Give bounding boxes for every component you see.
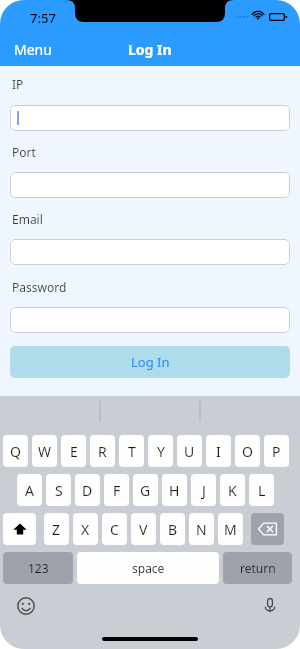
button[interactable]: G bbox=[133, 474, 158, 506]
button[interactable]: D bbox=[75, 474, 100, 506]
button[interactable]: Log In bbox=[10, 346, 290, 378]
staticText: Password bbox=[12, 279, 67, 295]
button[interactable]: T bbox=[119, 435, 144, 467]
staticText: 7:57 bbox=[30, 9, 56, 27]
staticText: M bbox=[224, 520, 237, 539]
button[interactable]: A bbox=[17, 474, 42, 506]
button[interactable]: N bbox=[189, 513, 214, 545]
button[interactable]: M bbox=[218, 513, 243, 545]
staticText: I bbox=[216, 442, 221, 461]
staticText: E bbox=[70, 442, 78, 461]
staticText: J bbox=[202, 481, 206, 500]
staticText: Z bbox=[52, 520, 61, 539]
button[interactable]: I bbox=[206, 435, 231, 467]
button[interactable]: Shift bbox=[3, 513, 36, 545]
button[interactable]: P bbox=[264, 435, 289, 467]
staticText: N bbox=[196, 520, 207, 539]
staticText: P bbox=[272, 442, 281, 461]
button[interactable] bbox=[10, 172, 290, 198]
staticText: B bbox=[168, 520, 178, 539]
staticText: F bbox=[113, 481, 121, 500]
staticText: Email bbox=[12, 211, 43, 227]
staticText: T bbox=[128, 442, 136, 461]
button[interactable]: L bbox=[249, 474, 274, 506]
button[interactable] bbox=[10, 307, 290, 333]
staticText: O bbox=[242, 442, 253, 461]
button[interactable]: O bbox=[235, 435, 260, 467]
staticText: Y bbox=[157, 442, 165, 461]
button[interactable]: Y bbox=[148, 435, 173, 467]
button[interactable]: Q bbox=[3, 435, 28, 467]
button[interactable]: R bbox=[90, 435, 115, 467]
button[interactable]: Emoji keyboard bbox=[14, 594, 38, 618]
staticText: 123 bbox=[28, 560, 49, 576]
staticText: C bbox=[110, 520, 119, 539]
button[interactable]: Backspace bbox=[251, 513, 284, 545]
staticText: R bbox=[98, 442, 107, 461]
button[interactable]: J bbox=[191, 474, 216, 506]
button[interactable]: U bbox=[177, 435, 202, 467]
staticText: U bbox=[184, 442, 195, 461]
staticText: H bbox=[169, 481, 180, 500]
staticText: Log In bbox=[131, 353, 170, 371]
button[interactable]: F bbox=[104, 474, 129, 506]
staticText: A bbox=[25, 481, 34, 500]
button[interactable]: return bbox=[223, 552, 292, 584]
staticText: X bbox=[81, 520, 90, 539]
staticText: G bbox=[140, 481, 151, 500]
staticText: D bbox=[82, 481, 93, 500]
button[interactable]: W bbox=[32, 435, 57, 467]
staticText: Log In bbox=[128, 40, 172, 59]
button[interactable]: Z bbox=[44, 513, 69, 545]
button[interactable]: K bbox=[220, 474, 245, 506]
staticText: V bbox=[139, 520, 148, 539]
button[interactable]: space bbox=[77, 552, 219, 584]
button[interactable] bbox=[10, 105, 290, 131]
staticText: W bbox=[38, 442, 52, 461]
button[interactable]: V bbox=[131, 513, 156, 545]
staticText: Q bbox=[10, 442, 21, 461]
staticText: L bbox=[258, 481, 266, 500]
button[interactable]: Menu bbox=[14, 36, 52, 62]
staticText: IP bbox=[12, 76, 24, 92]
button[interactable]: X bbox=[73, 513, 98, 545]
button[interactable]: E bbox=[61, 435, 86, 467]
button[interactable]: S bbox=[46, 474, 71, 506]
button[interactable]: H bbox=[162, 474, 187, 506]
staticText: return bbox=[240, 560, 276, 576]
button[interactable]: B bbox=[160, 513, 185, 545]
button[interactable] bbox=[10, 239, 290, 265]
staticText: Menu bbox=[14, 40, 52, 59]
staticText: K bbox=[228, 481, 237, 500]
button[interactable]: C bbox=[102, 513, 127, 545]
staticText: S bbox=[55, 481, 63, 500]
staticText: space bbox=[132, 560, 165, 576]
button[interactable]: Dictation bbox=[258, 594, 282, 618]
staticText: Port bbox=[12, 144, 36, 160]
button[interactable]: 123 bbox=[3, 552, 73, 584]
